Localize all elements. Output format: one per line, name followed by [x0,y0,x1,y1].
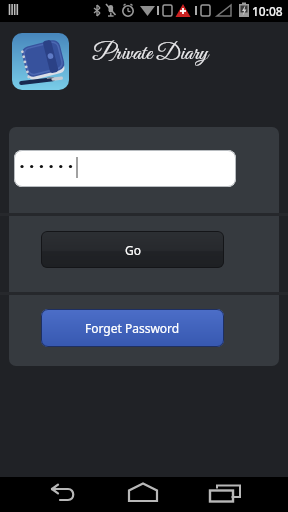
button[interactable]: Go [41,231,224,268]
staticText: 10:08 [252,3,283,19]
staticText: Forget Password [85,320,180,336]
button[interactable] [126,482,166,508]
staticText: Private Diary [93,39,208,68]
button[interactable] [48,484,80,504]
staticText: Go [125,242,141,258]
button[interactable]: Forget Password [41,309,224,347]
button[interactable] [206,484,246,506]
button[interactable] [14,150,236,187]
